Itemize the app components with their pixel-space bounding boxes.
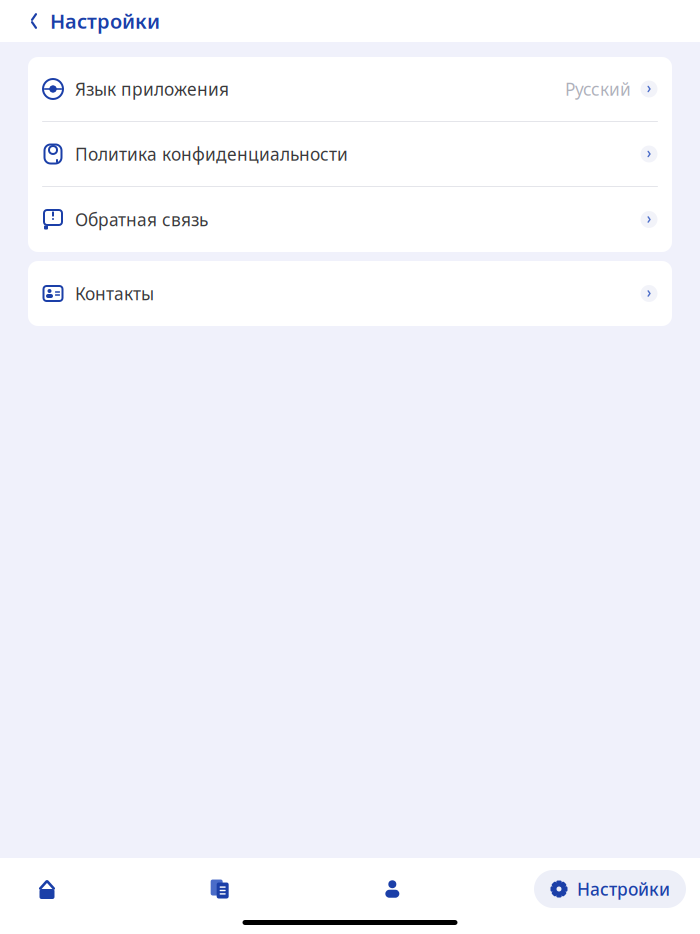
button[interactable]: Контакты	[28, 261, 672, 326]
staticText: Политика конфиденциальности	[75, 142, 348, 165]
button[interactable]: Настройки	[534, 870, 686, 908]
button[interactable]: Главная	[16, 865, 78, 913]
staticText: Контакты	[75, 282, 154, 305]
staticText: Русский	[565, 77, 631, 100]
staticText: Обратная связь	[75, 208, 208, 231]
staticText: Язык приложения	[75, 77, 229, 100]
staticText: Настройки	[577, 877, 670, 900]
staticText: Настройки	[50, 8, 160, 34]
button[interactable]: Настройки	[0, 0, 174, 42]
button[interactable]: Документы	[189, 865, 251, 913]
button[interactable]: Обратная связь	[28, 187, 672, 252]
button[interactable]: Язык приложения	[28, 57, 672, 122]
button[interactable]: Профиль	[361, 865, 423, 913]
button[interactable]: Политика конфиденциальности	[28, 122, 672, 187]
